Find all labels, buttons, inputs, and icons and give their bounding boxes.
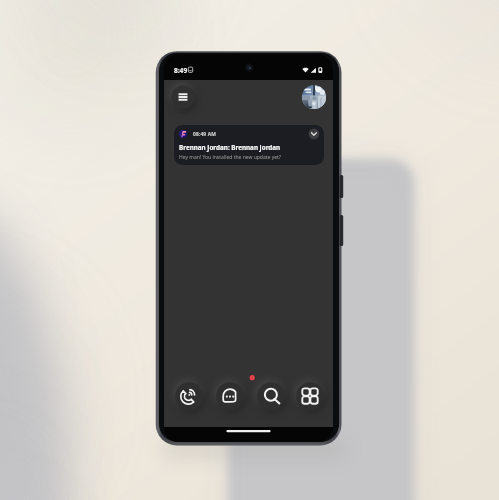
button[interactable]: Calls <box>174 381 204 411</box>
staticText: 8:49 <box>174 66 188 75</box>
button[interactable]: Chats <box>215 381 245 411</box>
staticText: 08:49 AM <box>193 131 217 138</box>
button[interactable]: Menu <box>170 84 196 110</box>
staticText: Hey man! You installed the new update ye… <box>179 154 282 161</box>
button[interactable]: 08:49 AM <box>174 125 324 165</box>
button[interactable]: Profile <box>301 84 327 110</box>
button[interactable]: Apps <box>295 381 325 411</box>
button[interactable]: Search <box>256 381 286 411</box>
staticText: Brennan Jordan: Brennan Jordan <box>179 143 281 152</box>
